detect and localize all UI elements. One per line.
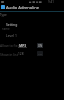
button[interactable]: ON (37, 43, 43, 48)
staticText: Type (0, 13, 7, 17)
button[interactable]: OFF (37, 51, 43, 56)
staticText: ON (38, 44, 42, 48)
staticText: Level 1 (6, 33, 17, 38)
staticText: Audio Adrenaline (6, 5, 40, 11)
staticText: MP3 (19, 43, 27, 48)
staticText: name (2, 27, 10, 31)
staticText: Setting (6, 22, 18, 27)
staticText: Show in list (0, 52, 18, 57)
staticText: 9:41 (48, 0, 54, 4)
staticText: 128 (18, 52, 24, 56)
staticText: Allow to fix title (0, 43, 25, 48)
staticText: OFF (38, 52, 43, 55)
button[interactable]: App icon (1, 5, 5, 9)
